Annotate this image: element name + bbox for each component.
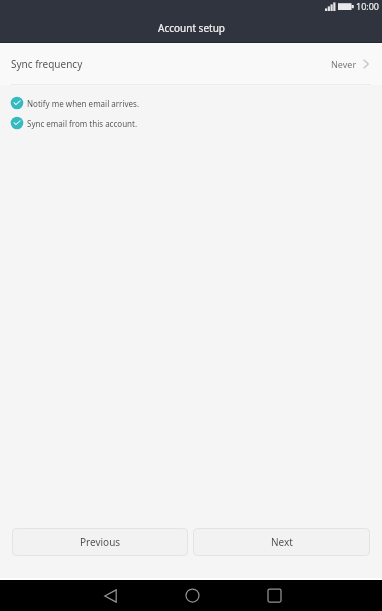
button[interactable]: Home xyxy=(171,580,213,611)
button[interactable]: Back xyxy=(89,580,131,611)
staticText: Sync frequency xyxy=(11,57,83,71)
button[interactable]: Recent apps xyxy=(253,580,295,611)
button[interactable]: Notify me when email arrives. xyxy=(0,93,382,113)
button[interactable]: Sync email from this account. xyxy=(0,113,382,133)
staticText: Notify me when email arrives. xyxy=(27,98,140,109)
staticText: Account setup xyxy=(158,21,225,35)
button[interactable]: Previous xyxy=(12,528,188,556)
staticText: Next xyxy=(271,535,293,549)
button[interactable]: Next xyxy=(193,528,370,556)
staticText: Previous xyxy=(80,535,121,549)
staticText: 10:00 xyxy=(356,0,380,12)
staticText: Never xyxy=(331,58,357,70)
button[interactable]: Sync frequency xyxy=(0,44,382,84)
staticText: Sync email from this account. xyxy=(27,118,138,129)
